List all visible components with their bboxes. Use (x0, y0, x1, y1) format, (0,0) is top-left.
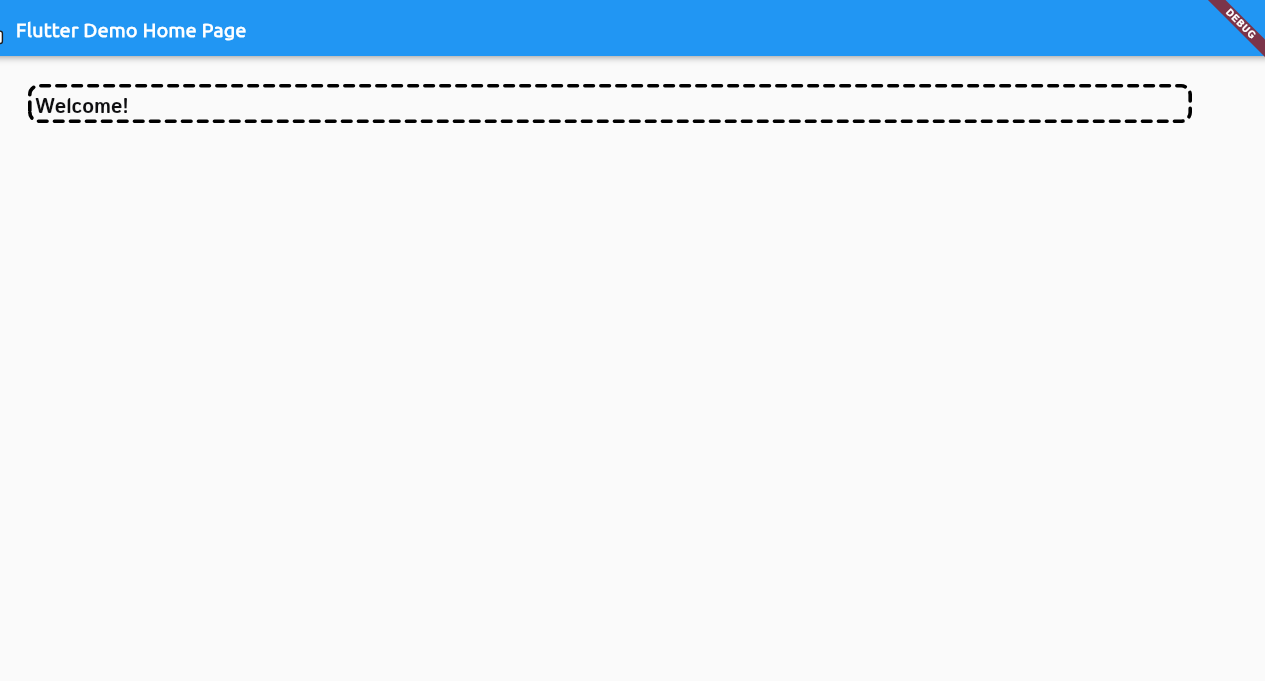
other: Debug banner (0, 0, 1265, 681)
staticText: Welcome! (35, 93, 129, 122)
staticText: Flutter Demo Home Page (16, 19, 247, 41)
button[interactable]: Welcome! (28, 84, 1192, 123)
